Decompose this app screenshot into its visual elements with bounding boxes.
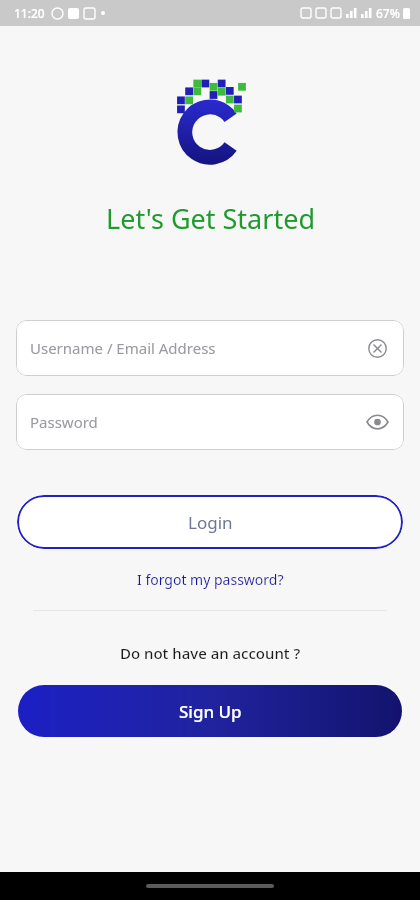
staticText: Password (30, 412, 98, 432)
staticText: Login (188, 511, 233, 534)
staticText: 67% (376, 5, 400, 21)
staticText: Sign Up (179, 700, 242, 723)
staticText: Do not have an account ? (120, 643, 301, 663)
button[interactable]: Show password (364, 409, 390, 435)
button[interactable]: Username / Email Address (16, 320, 404, 376)
button[interactable]: I forgot my password? (0, 564, 420, 595)
button[interactable]: Sign Up (18, 685, 402, 737)
button[interactable]: Login (17, 495, 403, 549)
button[interactable]: Password (16, 394, 404, 450)
staticText: Username / Email Address (30, 338, 216, 358)
staticText: I forgot my password? (137, 570, 284, 589)
button[interactable]: Clear text (364, 335, 390, 361)
staticText: Let's Get Started (106, 200, 315, 237)
staticText: 11:20 (14, 5, 45, 21)
